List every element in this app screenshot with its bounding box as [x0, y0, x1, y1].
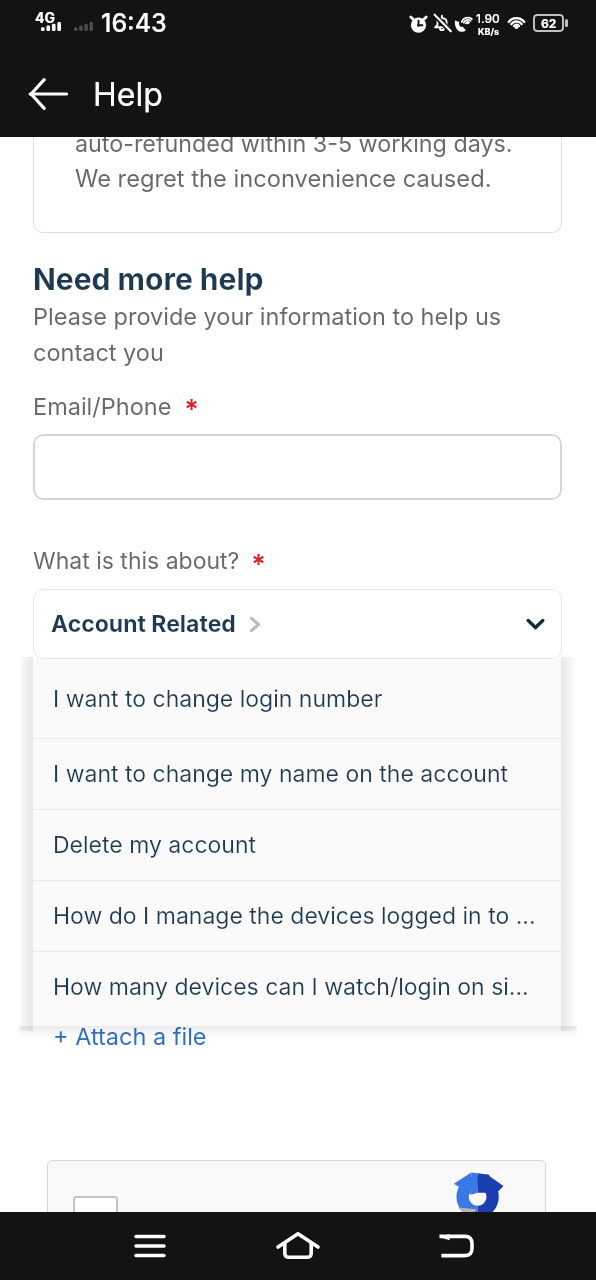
- staticText: *: [251, 548, 267, 581]
- staticText: We regret the inconvenience caused.: [75, 164, 492, 193]
- button[interactable]: I want to change login number: [33, 659, 561, 738]
- button[interactable]: Home: [258, 1212, 338, 1280]
- staticText: Account Related: [51, 610, 236, 638]
- button[interactable]: + Attach a file: [53, 1022, 207, 1050]
- staticText: Email/Phone: [33, 392, 172, 420]
- button[interactable]: I am not a robot checkbox: [73, 1196, 118, 1238]
- staticText: Help: [93, 75, 163, 114]
- staticText: What is this about?: [33, 547, 240, 575]
- staticText: Need more help: [33, 261, 264, 297]
- staticText: *: [184, 393, 200, 426]
- staticText: 4G: [35, 9, 55, 26]
- staticText: KB/s: [478, 26, 499, 37]
- staticText: 1.90: [476, 11, 500, 26]
- button[interactable]: Back: [19, 65, 77, 123]
- staticText: 16:43: [101, 8, 167, 38]
- staticText: 62: [541, 16, 557, 31]
- staticText: Please provide your information to help …: [33, 302, 518, 366]
- button[interactable]: Delete my account: [33, 810, 561, 880]
- button[interactable]: Email or phone input: [33, 434, 562, 500]
- button[interactable]: How many devices can I watch/login on si…: [33, 952, 561, 1022]
- button[interactable]: Back: [416, 1212, 496, 1280]
- staticText: I want to change my name on the account: [53, 760, 509, 788]
- staticText: auto-refunded within 3-5 working days.: [75, 129, 513, 157]
- staticText: I want to change login number: [53, 685, 383, 713]
- staticText: How do I manage the devices logged in to…: [53, 902, 536, 930]
- button[interactable]: Recent apps: [110, 1212, 190, 1280]
- button[interactable]: How do I manage the devices logged in to…: [33, 881, 561, 951]
- button[interactable]: Account Related: [33, 589, 562, 659]
- staticText: Delete my account: [53, 831, 257, 859]
- button[interactable]: I want to change my name on the account: [33, 739, 561, 809]
- staticText: How many devices can I watch/login on si…: [53, 973, 529, 1001]
